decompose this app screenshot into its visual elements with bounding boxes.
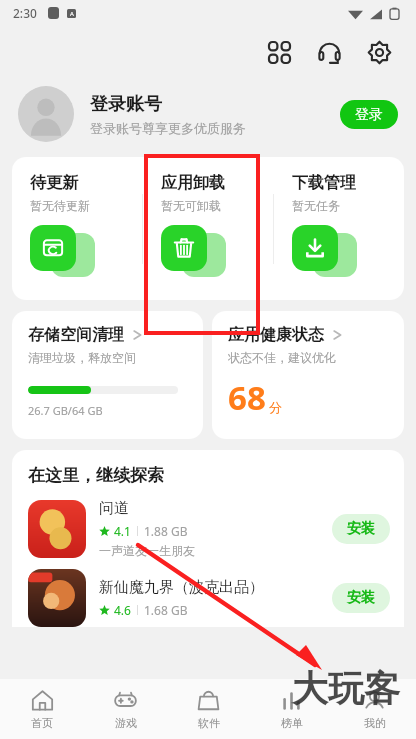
button[interactable]: 新仙魔九界（波克出品） <box>28 569 390 627</box>
staticText: 分 <box>269 399 282 415</box>
staticText: 清理垃圾，释放空间 <box>28 350 136 365</box>
button[interactable]: 存储空间清理 <box>12 311 203 439</box>
staticText: 游戏 <box>115 716 137 730</box>
staticText: 应用健康状态 <box>228 325 324 345</box>
button[interactable]: 安装 <box>332 583 390 613</box>
staticText: 4.6 <box>114 602 131 618</box>
button[interactable]: 应用健康状态 <box>212 311 404 439</box>
button[interactable]: 首页 <box>0 679 84 739</box>
staticText: 安装 <box>347 589 375 607</box>
staticText: 待更新 <box>30 173 78 193</box>
staticText: 1.88 GB <box>144 523 188 539</box>
staticText: 1.68 GB <box>144 602 188 618</box>
staticText: 大玩客 <box>292 666 400 711</box>
staticText: 68 <box>228 375 266 420</box>
staticText: 榜单 <box>281 716 303 730</box>
staticText: 登录账号 <box>90 93 162 116</box>
staticText: 问道 <box>99 499 129 518</box>
button[interactable]: 待更新 <box>12 157 142 300</box>
staticText: 暂无待更新 <box>30 198 90 213</box>
staticText: 我的 <box>364 716 386 730</box>
staticText: 登录账号尊享更多优质服务 <box>90 120 246 136</box>
button[interactable]: 游戏 <box>84 679 167 739</box>
button[interactable]: 应用卸载 <box>143 157 273 300</box>
staticText: 软件 <box>198 716 220 730</box>
staticText: 4.1 <box>114 523 131 539</box>
button[interactable]: 客服 <box>308 31 350 73</box>
staticText: 暂无任务 <box>292 198 340 213</box>
button[interactable]: 安装 <box>332 514 390 544</box>
staticText: 安装 <box>347 520 375 538</box>
button[interactable]: 分类 <box>258 31 300 73</box>
staticText: 应用卸载 <box>161 173 225 193</box>
staticText: 2:30 <box>13 5 37 21</box>
button[interactable]: 登录 <box>340 100 398 129</box>
button[interactable]: 我的 <box>333 679 416 739</box>
button[interactable]: 设置 <box>358 31 400 73</box>
button[interactable]: 问道 <box>28 499 390 558</box>
staticText: 状态不佳，建议优化 <box>228 350 336 365</box>
staticText: 首页 <box>31 716 53 730</box>
button[interactable]: 软件 <box>167 679 250 739</box>
button[interactable]: 下载管理 <box>274 157 404 300</box>
staticText: 暂无可卸载 <box>161 198 221 213</box>
staticText: 26.7 GB/64 GB <box>28 403 103 418</box>
staticText: 下载管理 <box>292 173 356 193</box>
staticText: 在这里，继续探索 <box>28 465 164 486</box>
button[interactable]: 登录账号 <box>0 78 416 150</box>
staticText: 存储空间清理 <box>28 325 124 345</box>
staticText: A <box>70 10 74 18</box>
button[interactable]: 榜单 <box>250 679 333 739</box>
staticText: 登录 <box>355 106 383 124</box>
staticText: 新仙魔九界（波克出品） <box>99 578 264 597</box>
staticText: 一声道友一生朋友 <box>99 543 195 558</box>
